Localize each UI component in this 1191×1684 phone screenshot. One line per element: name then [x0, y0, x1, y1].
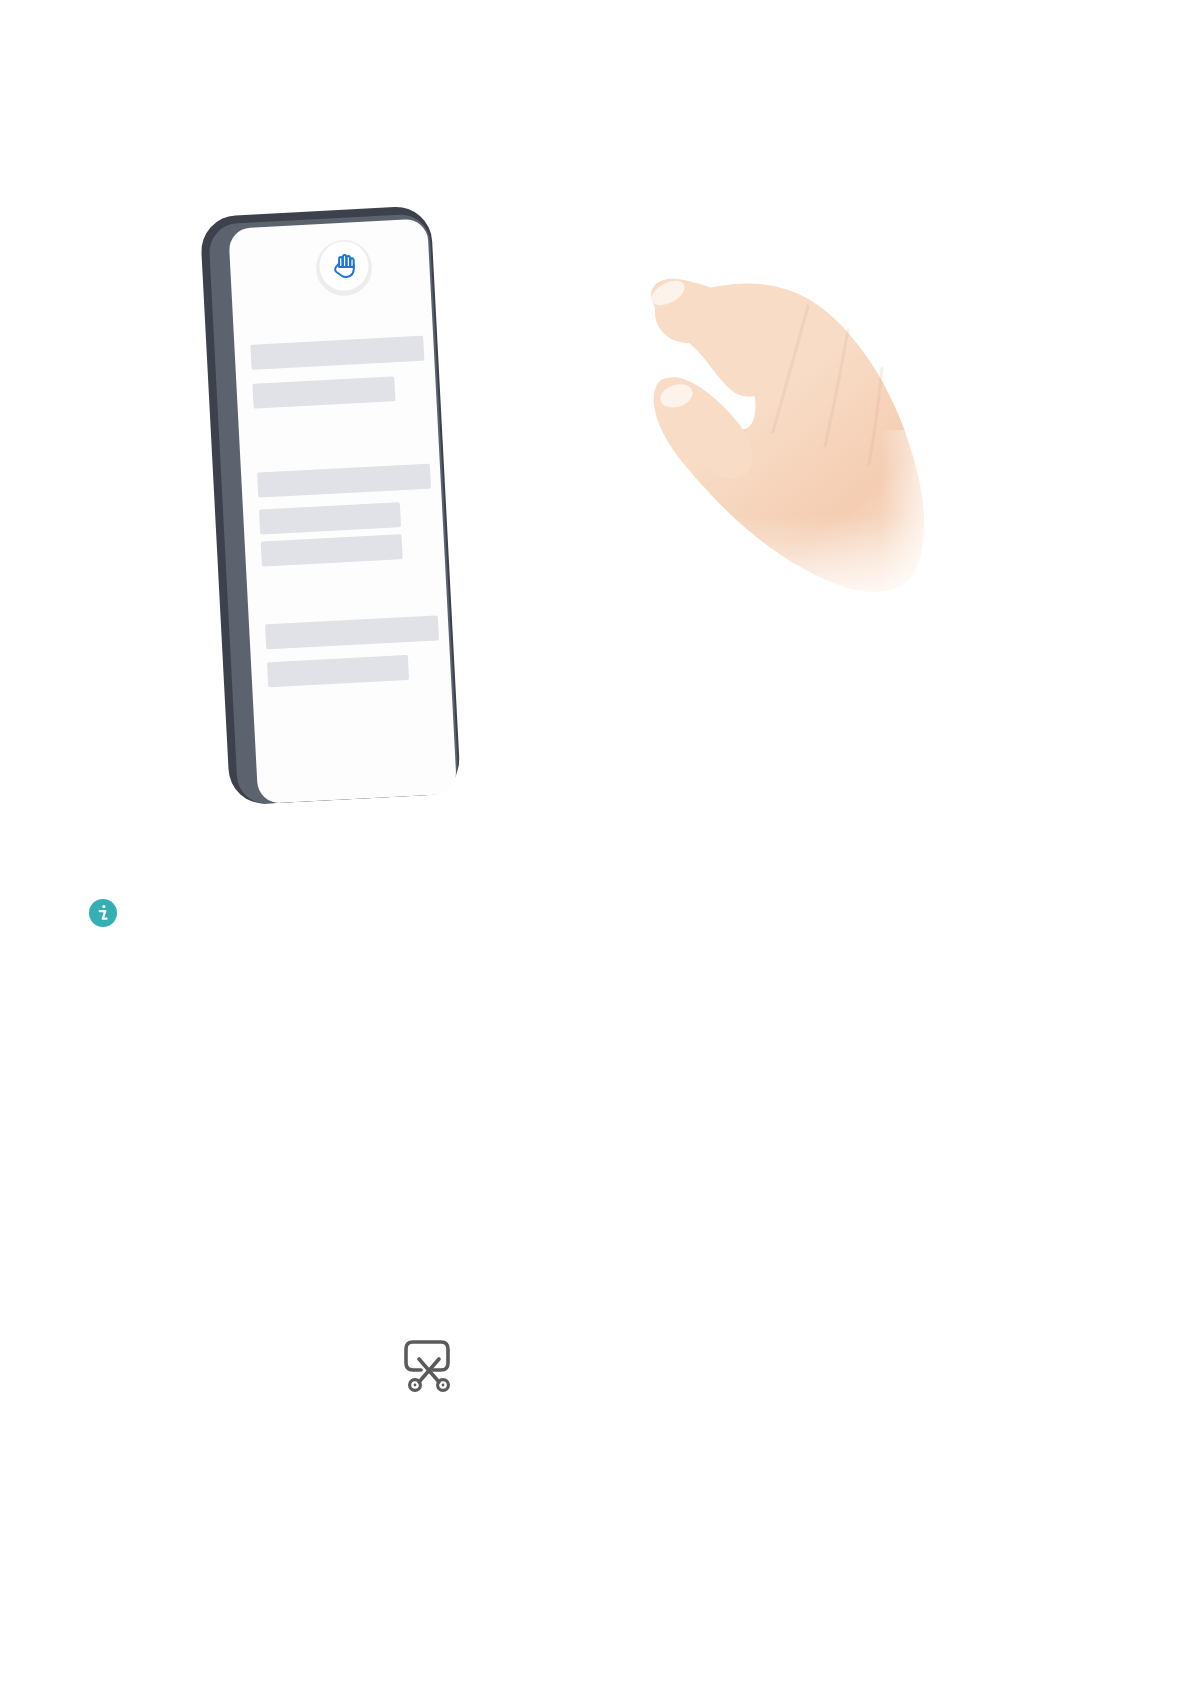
button[interactable]: Screenshot snip [398, 1337, 456, 1395]
button[interactable]: Information [89, 899, 117, 927]
